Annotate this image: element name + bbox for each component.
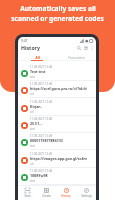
staticText: 25.51... [30,121,43,126]
staticText: Create [42,194,51,198]
staticText: Scan [24,194,31,198]
button[interactable]: 11.08.2021 13:48 [18,81,96,98]
staticText: 11.08.2021 13:48 [30,65,53,69]
staticText: 11.08.2021 13:48 [30,152,53,156]
staticText: 11.08.2021 13:48 [30,100,53,104]
staticText: All [35,55,40,60]
staticText: Settings [81,194,92,198]
button[interactable]: All [18,53,57,61]
staticText: Kirjan. [30,104,42,109]
button[interactable]: 11.08.2021 13:48 [18,168,96,185]
staticText: scanned or generated codes [11,14,104,23]
staticText: Favourites [68,55,85,60]
button[interactable]: 11.08.2021 13:48 [18,116,96,133]
button[interactable]: Favourites [57,53,96,61]
button[interactable]: 11.08.2021 13:48 [18,133,96,150]
button[interactable]: More options [89,45,95,51]
button[interactable]: Scan [18,186,37,200]
staticText: 1088Yw98 [30,173,48,178]
staticText: https://images.app.goo.gl/sc4rvtbTw1rkeX… [30,156,87,161]
button[interactable]: Create [37,186,56,200]
button[interactable]: History [56,186,76,200]
staticText: 11.08.2021 13:48 [30,82,53,86]
staticText: 11.08.2021 13:48 [30,117,53,121]
button[interactable]: 11.08.2021 13:48 [18,64,96,81]
staticText: text [30,75,35,79]
staticText: History [61,194,71,198]
staticText: 11.08.2021 13:48 [30,134,53,138]
button[interactable]: 11.08.2021 13:48 [18,151,96,168]
staticText: url [30,162,34,166]
staticText: 0000119877886133 [30,138,63,143]
staticText: text [30,144,35,148]
staticText: History [21,44,40,51]
button[interactable]: Settings [76,186,96,200]
staticText: url [30,92,34,96]
staticText: text [30,179,35,183]
staticText: 9:41 [21,38,28,43]
staticText: 11.08.2021 13:48 [30,169,53,173]
staticText: text [30,127,35,131]
staticText: https://surf.guru.pro.ru/v/?id=b0qs3zaYT… [30,86,87,91]
staticText: Automatically saves all [20,4,96,13]
button[interactable]: Delete all [82,44,89,51]
staticText: Text test [30,69,46,74]
staticText: url [30,110,34,114]
button[interactable]: Search [75,44,82,51]
button[interactable]: 11.08.2021 13:48 [18,99,96,116]
